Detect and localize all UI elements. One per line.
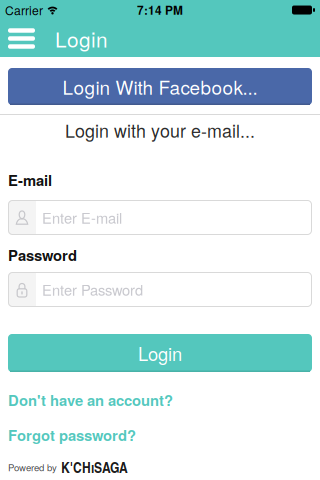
staticText: Login with your e-mail... [65,117,255,143]
button[interactable]: Menu [0,20,47,57]
button[interactable]: Forgot password? [0,426,320,444]
staticText: 7:14 PM [137,1,183,18]
button[interactable]: E-mail [0,200,320,235]
staticText: Powered by [8,460,57,474]
button[interactable]: Login [8,334,312,372]
staticText: Login [55,24,108,53]
button[interactable]: Don't have an account? [0,391,320,409]
staticText: K'CHıSAGA [61,457,128,477]
button[interactable]: Login With Facebook... [8,68,312,105]
button[interactable]: Password [0,272,320,307]
staticText: Password [8,244,77,266]
staticText: E-mail [8,169,52,191]
staticText: Carrier [5,1,43,19]
staticText: Login With Facebook... [62,73,257,100]
staticText: Don't have an account? [8,389,173,411]
staticText: Enter Password [42,279,143,300]
staticText: Forgot password? [8,424,136,446]
staticText: Enter E-mail [42,207,122,228]
staticText: Login [138,340,182,366]
